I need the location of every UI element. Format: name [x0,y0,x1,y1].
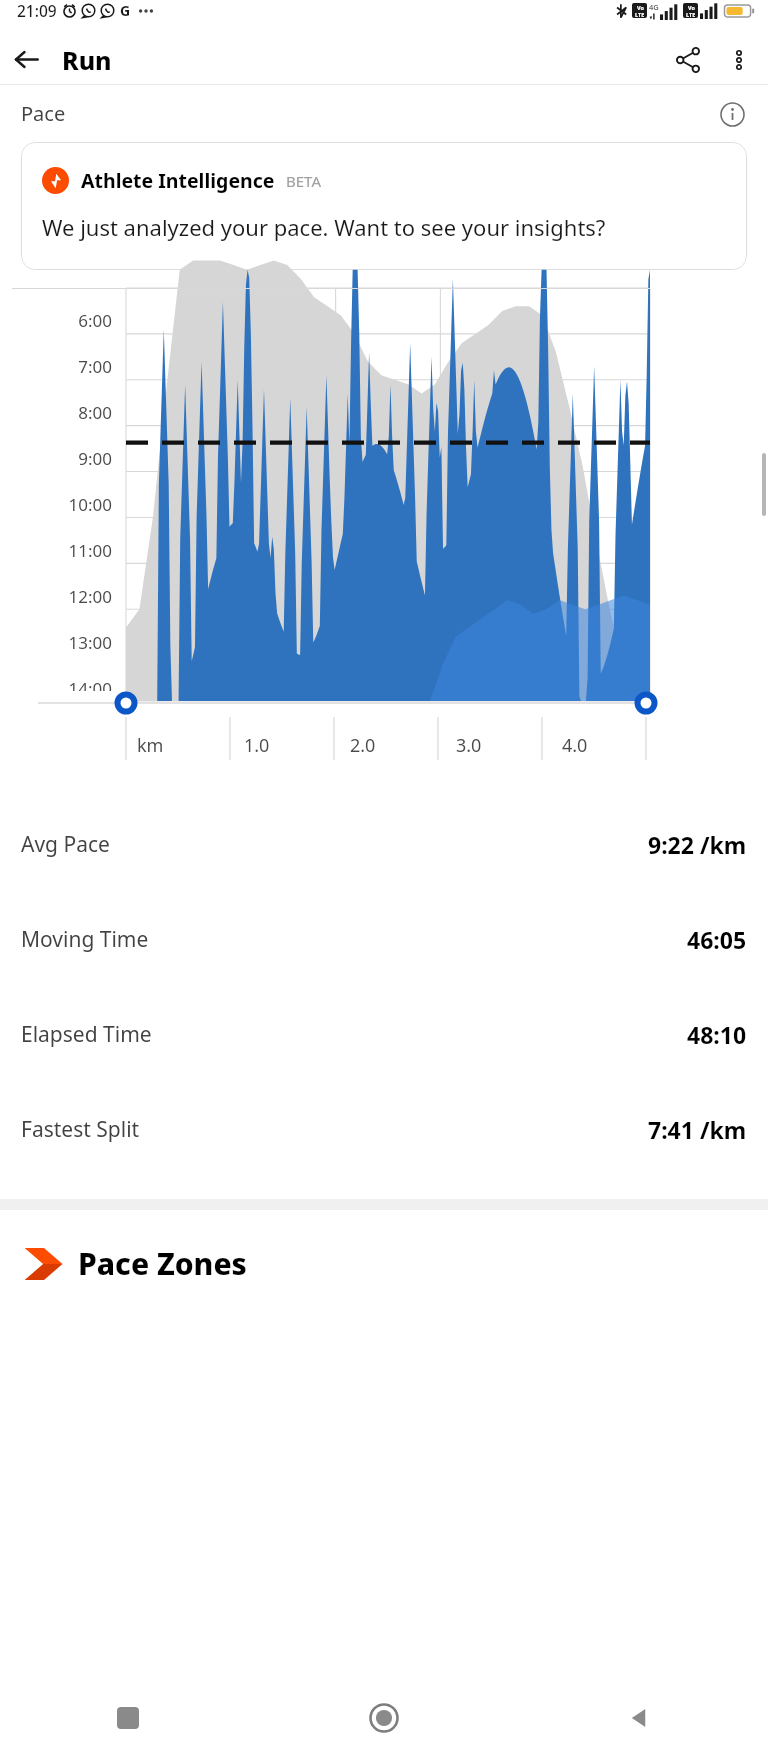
staticText: We just analyzed your pace. Want to see … [42,212,606,242]
staticText: 14:00 [18,677,112,691]
button[interactable]: Avg Pace [0,797,768,892]
staticText: LTE [686,11,696,18]
staticText: 4.0 [562,733,588,758]
staticText: Vo [688,4,695,11]
button[interactable]: Home [256,1687,512,1749]
staticText: BETA [286,171,321,191]
staticText: 48:10 [687,1019,747,1050]
staticText: 11:00 [18,539,112,562]
staticText: 12:00 [18,585,112,608]
staticText: 8:00 [18,401,112,424]
button[interactable]: Athlete Intelligence [21,142,747,270]
staticText: Run [62,43,112,77]
staticText: Athlete Intelligence [81,167,275,194]
staticText: 1.0 [244,733,270,758]
staticText: km [137,733,164,758]
button[interactable]: Back [512,1687,768,1749]
staticText: G [120,1,131,20]
staticText: Vo [637,4,644,11]
button[interactable]: Pace Zones [0,1237,768,1290]
button[interactable]: Share [662,35,714,84]
staticText: Moving Time [21,925,149,954]
staticText: 13:00 [18,631,112,654]
button[interactable]: Recents [0,1687,256,1749]
staticText: 6:00 [18,309,112,332]
staticText: 10:00 [18,493,112,516]
staticText: 3.0 [456,733,482,758]
button[interactable]: Information [712,94,752,134]
staticText: 7:00 [18,355,112,378]
staticText: 9:22 /km [648,829,747,860]
staticText: 7:41 /km [648,1114,747,1145]
button[interactable]: Elapsed Time [0,987,768,1082]
staticText: 4G [649,2,659,12]
staticText: 21:09 [17,0,57,21]
staticText: Fastest Split [21,1115,140,1144]
staticText: 46:05 [687,924,747,955]
button[interactable]: More options [714,35,764,84]
staticText: 2.0 [350,733,376,758]
button[interactable]: Back [0,35,52,84]
staticText: Avg Pace [21,830,110,859]
staticText: LTE [635,11,645,18]
staticText: Elapsed Time [21,1020,152,1049]
staticText: Pace [21,100,66,127]
staticText: Pace Zones [78,1243,247,1284]
staticText: 9:00 [18,447,112,470]
button[interactable]: Moving Time [0,892,768,987]
button[interactable]: Fastest Split [0,1082,768,1177]
